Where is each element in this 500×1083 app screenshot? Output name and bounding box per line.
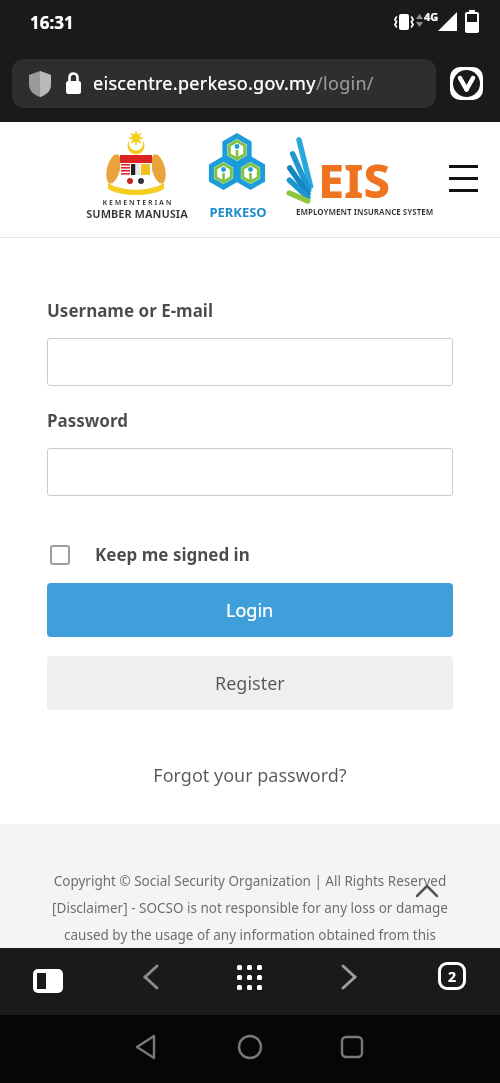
staticText: Copyright © Social Security Organization… [0, 872, 500, 890]
staticText: K E M E N T E R I A N [92, 198, 182, 208]
staticText: caused by the usage of any information o… [0, 926, 500, 944]
staticText: 16:31 [30, 11, 74, 34]
button[interactable]: Keep me signed in [50, 543, 250, 566]
staticText: /login/ [316, 71, 374, 96]
button[interactable] [47, 338, 453, 386]
button[interactable]: Forgot your password? [0, 763, 500, 788]
button[interactable] [234, 961, 266, 1001]
button[interactable] [47, 448, 453, 496]
staticText: PERKESO [203, 203, 273, 221]
staticText: Register [215, 671, 285, 696]
button[interactable]: 2 [438, 962, 466, 990]
staticText: EMPLOYMENT INSURANCE SYSTEM [296, 206, 434, 217]
button[interactable] [337, 1033, 367, 1063]
button[interactable] [136, 960, 166, 1002]
staticText: SUMBER MANUSIA [86, 206, 188, 221]
button[interactable] [450, 67, 483, 100]
button[interactable] [334, 960, 364, 1002]
staticText: Username or E-mail [47, 299, 214, 322]
button[interactable] [33, 969, 63, 993]
staticText: eiscentre.perkeso.gov.my [93, 71, 316, 96]
staticText: 4G [424, 9, 439, 24]
button[interactable] [449, 165, 479, 192]
button[interactable] [133, 1033, 163, 1063]
staticText: 2 [448, 967, 457, 986]
staticText: [Disclaimer] - SOCSO is not responsible … [0, 899, 500, 917]
staticText: Password [47, 409, 128, 432]
staticText: Login [226, 598, 274, 623]
button[interactable]: Register [47, 656, 453, 710]
button[interactable]: eiscentre.perkeso.gov.my [12, 59, 436, 108]
staticText: EIS [318, 148, 390, 212]
button[interactable]: Login [47, 583, 453, 637]
button[interactable] [235, 1033, 265, 1063]
staticText: Keep me signed in [95, 543, 250, 566]
